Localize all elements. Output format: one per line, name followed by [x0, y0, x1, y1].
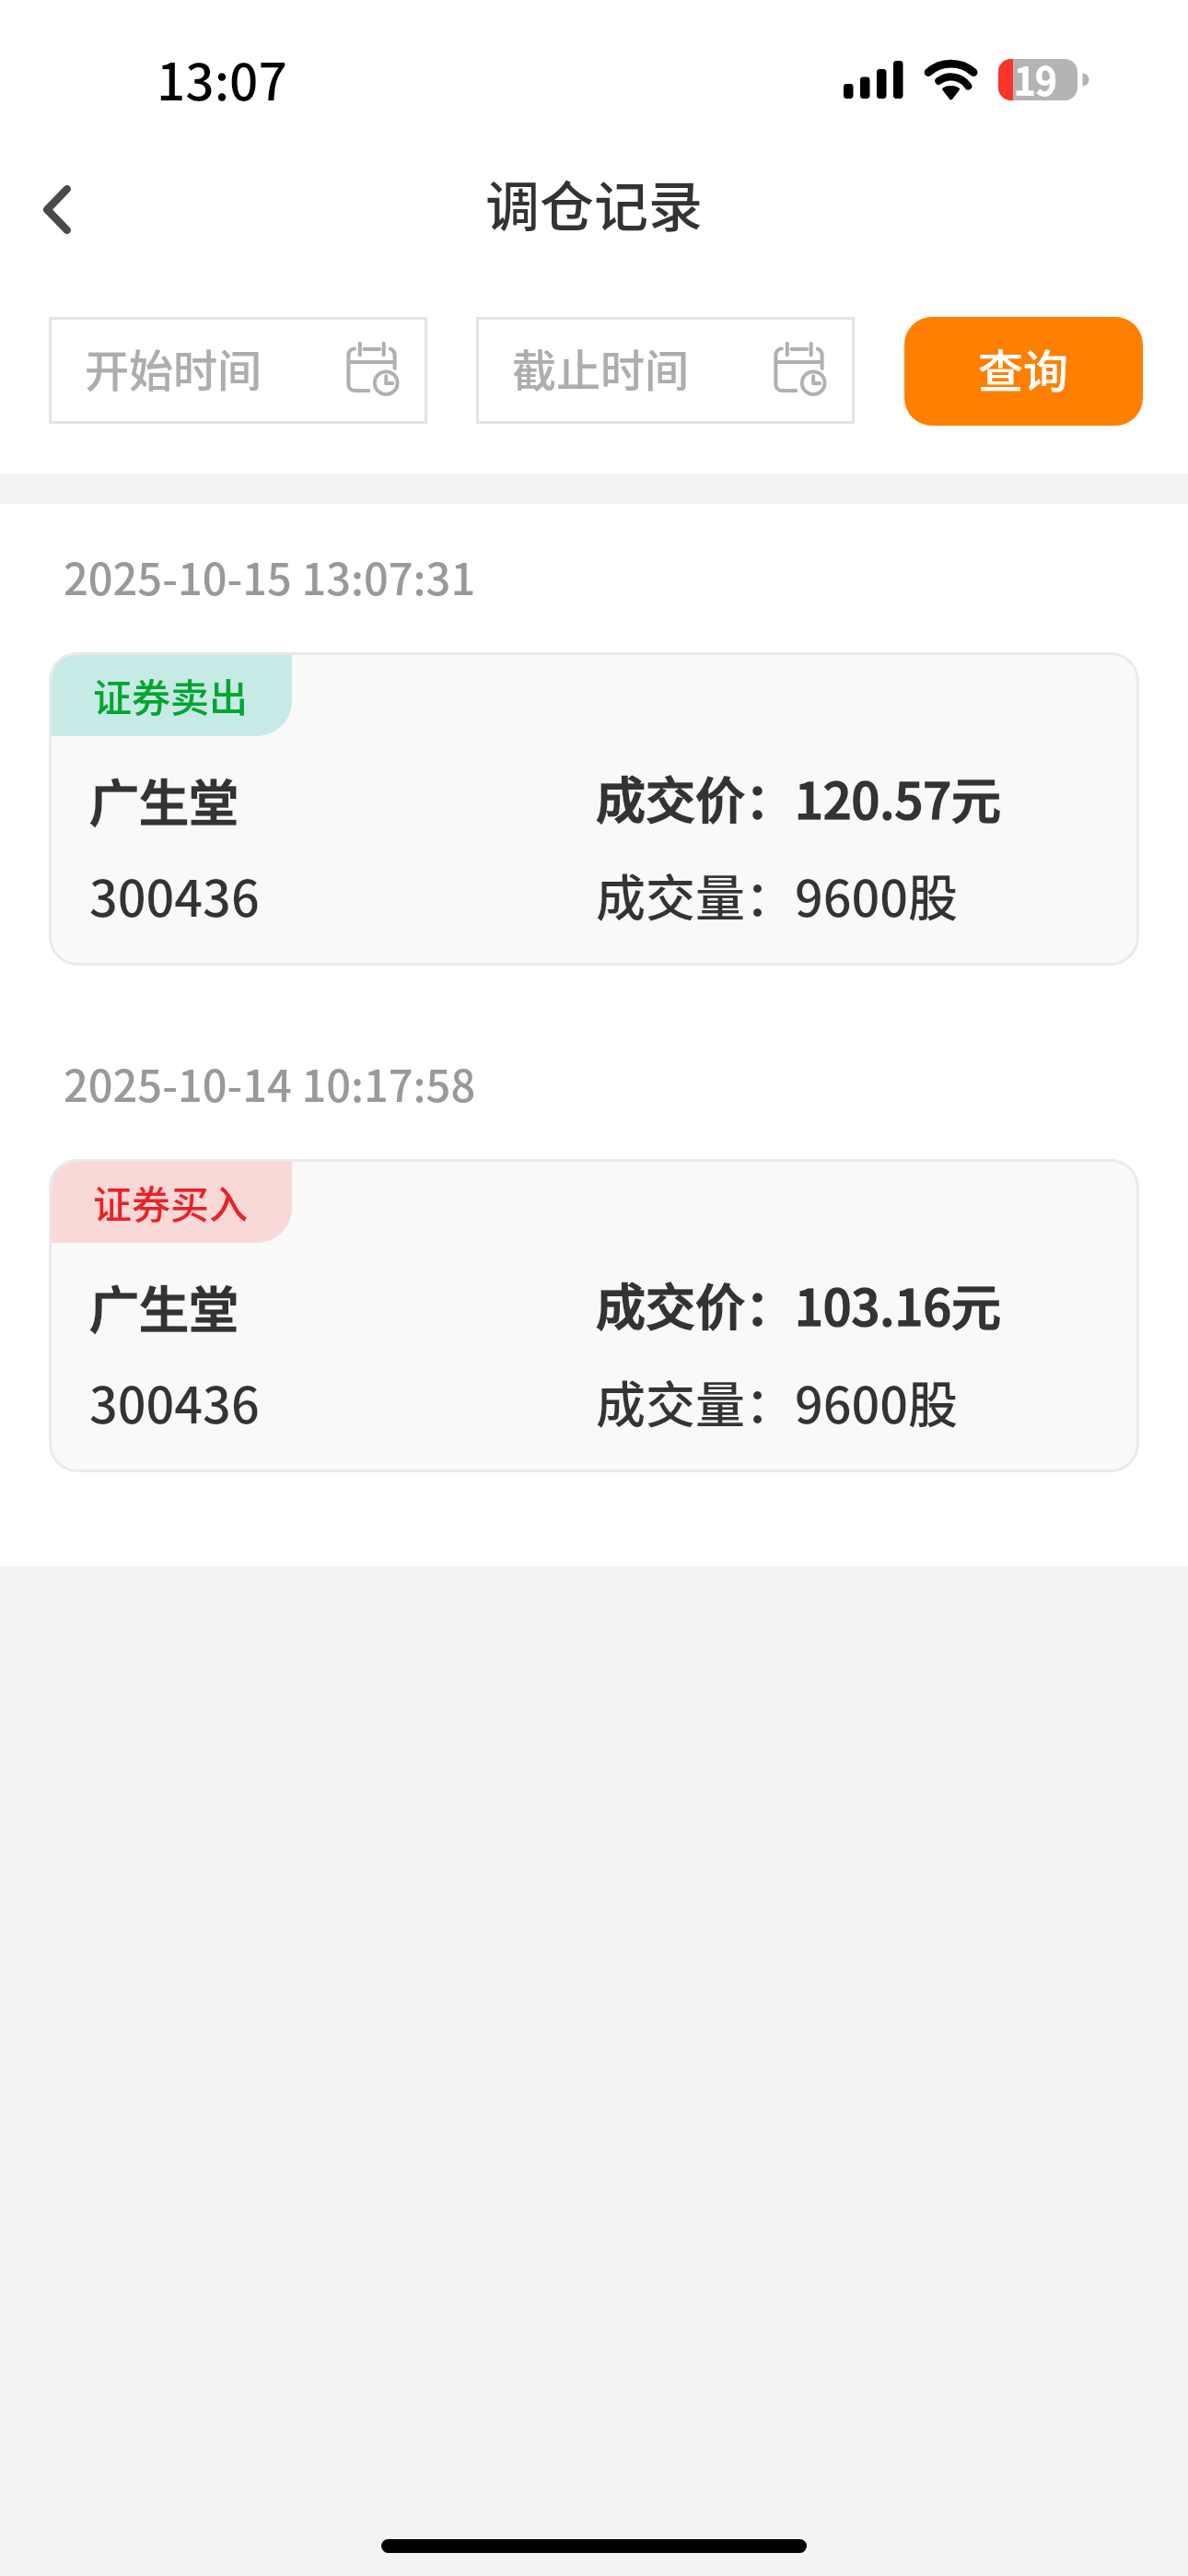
staticText: 证券卖出 — [93, 676, 249, 721]
staticText: 调仓记录 — [485, 176, 704, 239]
staticText: 成交价：103.16元 — [596, 1280, 1001, 1338]
staticText: 成交价：120.57元 — [596, 773, 1001, 831]
staticText: 证券买入 — [93, 1183, 249, 1228]
staticText: 查询 — [978, 345, 1069, 398]
button[interactable]: 查询 — [904, 317, 1143, 426]
button[interactable]: 证券卖出 — [49, 652, 1139, 966]
staticText: 成交量：9600股 — [596, 871, 959, 929]
button[interactable]: 开始时间 — [49, 317, 427, 424]
staticText: 截止时间 — [512, 345, 690, 397]
staticText: 2025-10-14 10:17:58 — [64, 1061, 476, 1112]
staticText: 2025-10-15 13:07:31 — [64, 555, 476, 605]
staticText: 广生堂 — [89, 1282, 239, 1341]
staticText: 19 — [1014, 60, 1057, 104]
button[interactable]: Back — [0, 147, 111, 267]
staticText: 300436 — [89, 871, 260, 929]
staticText: 成交量：9600股 — [596, 1377, 959, 1435]
staticText: 广生堂 — [89, 776, 239, 834]
staticText: 开始时间 — [85, 345, 262, 397]
staticText: 13:07 — [157, 53, 287, 112]
button[interactable]: 证券买入 — [49, 1159, 1139, 1472]
staticText: 300436 — [89, 1377, 260, 1435]
button[interactable]: 截止时间 — [476, 317, 855, 424]
